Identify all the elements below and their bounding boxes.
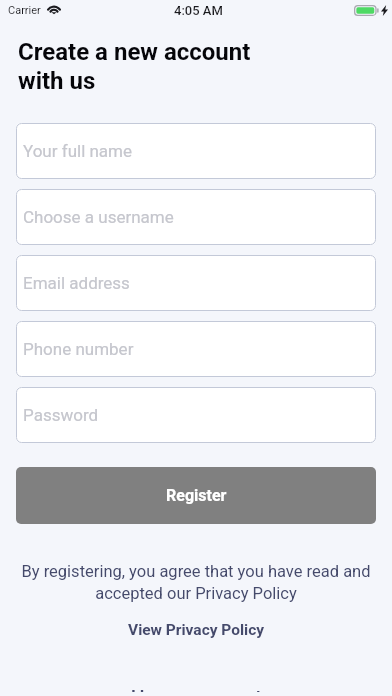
staticText: Create a new account with us [18, 38, 251, 95]
button[interactable]: Register [16, 467, 376, 524]
staticText: View Privacy Policy [128, 621, 265, 639]
staticText: Carrier [8, 4, 41, 17]
button[interactable]: View Privacy Policy [120, 617, 273, 643]
staticText: Password [23, 405, 99, 425]
staticText: Choose a username [23, 207, 174, 227]
button[interactable]: Your full name [16, 123, 376, 179]
staticText: By registering, you agree that you have … [12, 562, 380, 603]
button[interactable]: Password [16, 387, 376, 443]
staticText: Phone number [23, 339, 134, 359]
button[interactable]: I have an account [123, 683, 270, 696]
staticText: Register [166, 486, 227, 505]
button[interactable]: Choose a username [16, 189, 376, 245]
staticText: Email address [23, 273, 130, 293]
other: Wi-Fi [46, 4, 62, 14]
staticText: Your full name [23, 141, 133, 161]
other: Battery charging [354, 5, 388, 16]
button[interactable]: Phone number [16, 321, 376, 377]
button[interactable]: Email address [16, 255, 376, 311]
staticText: 4:05 AM [174, 3, 223, 18]
staticText: I have an account [131, 687, 262, 692]
